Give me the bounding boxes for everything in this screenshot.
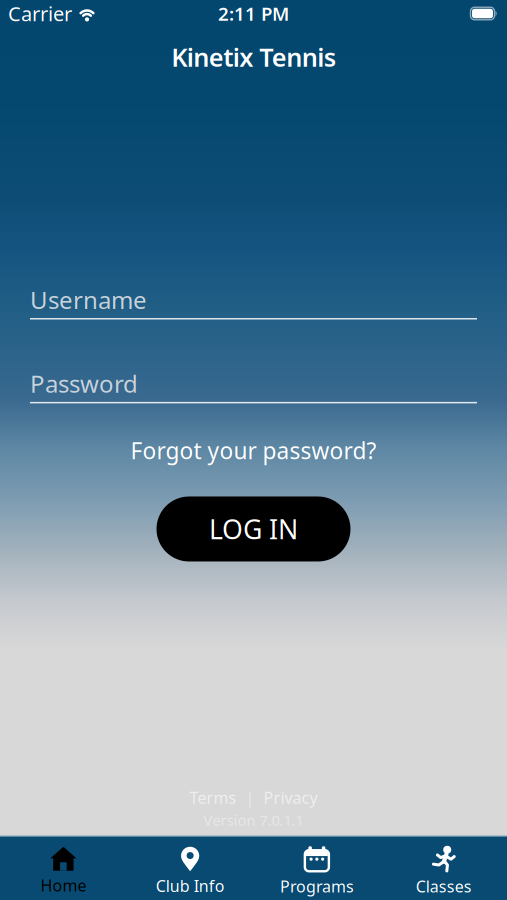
button[interactable]: Classes	[380, 846, 507, 897]
staticText: Password	[30, 367, 138, 399]
staticText: Terms	[189, 787, 236, 808]
staticText: Club Info	[156, 875, 225, 896]
textField[interactable]: Username	[0, 284, 507, 319]
staticText: 2:11 PM	[218, 1, 289, 26]
staticText: Privacy	[263, 787, 317, 808]
staticText: Kinetix Tennis	[171, 40, 336, 74]
staticText: Username	[30, 284, 147, 315]
staticText: |	[245, 787, 254, 808]
button[interactable]: Home	[0, 847, 127, 896]
staticText: Version 7.0.1.1	[203, 810, 303, 830]
staticText: Programs	[280, 876, 354, 897]
button[interactable]: LOG IN	[156, 496, 350, 561]
button[interactable]: Programs	[253, 846, 380, 897]
textField[interactable]: Password	[0, 367, 507, 403]
staticText: LOG IN	[209, 511, 298, 547]
staticText: Classes	[416, 876, 472, 897]
button[interactable]: Terms	[189, 787, 236, 808]
button[interactable]: Privacy	[263, 787, 317, 808]
staticText: Forgot your password?	[130, 435, 376, 465]
button[interactable]: Club Info	[127, 846, 254, 896]
button[interactable]: Forgot your password?	[130, 435, 376, 465]
staticText: Carrier	[8, 0, 72, 27]
staticText: Home	[40, 875, 86, 896]
